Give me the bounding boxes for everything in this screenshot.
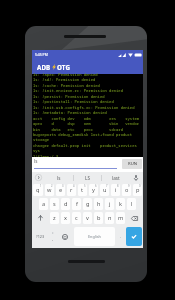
staticText: q — [36, 186, 40, 194]
staticText: d — [64, 200, 68, 208]
staticText: 5 — [84, 184, 86, 188]
staticText: bugreports debug_ramdisk lost+found prod… — [33, 132, 133, 137]
staticText: 0 — [139, 184, 141, 188]
staticText: 8 — [117, 184, 119, 188]
staticText: l — [131, 200, 133, 208]
button[interactable]: h — [94, 198, 103, 210]
button[interactable]: last — [102, 172, 129, 183]
staticText: x — [64, 214, 67, 222]
button[interactable]: 3 — [56, 184, 65, 196]
staticText: 2 — [51, 184, 53, 188]
staticText: , — [52, 236, 54, 242]
button[interactable]: m — [116, 212, 125, 224]
button[interactable]: l — [127, 198, 136, 210]
button[interactable]: f — [72, 198, 81, 210]
staticText: y — [92, 186, 95, 194]
button[interactable]: Voice input — [129, 172, 143, 183]
button[interactable]: 6 — [89, 184, 98, 196]
staticText: ° — [52, 232, 54, 236]
staticText: ls: /cache: Permission denied — [33, 83, 100, 88]
button[interactable]: d — [61, 198, 70, 210]
staticText: LS — [85, 175, 90, 181]
button[interactable]: b — [94, 212, 103, 224]
staticText: 3 — [62, 184, 64, 188]
button[interactable]: Emoji — [57, 225, 72, 248]
staticText: ls — [34, 158, 38, 164]
staticText: c — [75, 214, 78, 222]
staticText: g — [86, 200, 90, 208]
staticText: z — [53, 214, 56, 222]
button[interactable]: n — [105, 212, 114, 224]
button[interactable]: j — [105, 198, 114, 210]
staticText: m — [118, 214, 124, 222]
staticText: t — [81, 186, 84, 194]
staticText: ls: /init.environ.rc: Permission denied — [33, 88, 123, 93]
staticText: English — [88, 234, 101, 239]
button[interactable]: ls — [45, 172, 73, 183]
button[interactable]: 1 — [33, 184, 43, 196]
staticText: 1|flame:/ $ — [33, 154, 59, 159]
staticText: 9 — [128, 184, 130, 188]
staticText: f — [76, 200, 78, 208]
button[interactable]: ° — [49, 225, 57, 248]
staticText: last — [112, 175, 120, 181]
staticText: charger default.prop init product_servic… — [33, 143, 137, 148]
staticText: s — [53, 200, 56, 208]
button[interactable]: Enter — [126, 227, 142, 246]
staticText: ls: /postinstall: Permission denied — [33, 99, 114, 104]
staticText: OTG — [57, 63, 71, 71]
staticText: u — [103, 186, 107, 194]
staticText: . — [120, 234, 122, 240]
staticText: bin data etc proc sdcard — [33, 127, 123, 132]
staticText: acct config dev odm res system — [33, 116, 140, 121]
staticText: 4 — [73, 184, 75, 188]
staticText: a — [42, 200, 46, 208]
button[interactable]: Shift — [32, 211, 49, 225]
staticText: w — [47, 186, 52, 194]
button[interactable]: v — [83, 212, 92, 224]
button[interactable]: ?123 — [32, 225, 49, 248]
staticText: 6 — [95, 184, 97, 188]
button[interactable]: 0 — [133, 184, 142, 196]
staticText: 7 — [106, 184, 108, 188]
button[interactable]: x — [61, 212, 70, 224]
staticText: ls — [57, 175, 61, 181]
button[interactable]: 9 — [122, 184, 131, 196]
staticText: sys — [33, 148, 40, 153]
staticText: ?123 — [36, 234, 45, 239]
staticText: b — [97, 214, 101, 222]
staticText: n — [108, 214, 112, 222]
staticText: ls: /apex: Permission denied — [33, 72, 98, 77]
button[interactable]: More suggestions — [32, 172, 45, 183]
staticText: k — [119, 200, 122, 208]
staticText: RUN — [128, 161, 137, 167]
staticText: i — [115, 186, 117, 194]
button[interactable]: z — [50, 212, 59, 224]
staticText: storage — [33, 137, 50, 142]
button[interactable]: 8 — [111, 184, 120, 196]
staticText: j — [109, 200, 111, 208]
button[interactable]: LS — [74, 172, 101, 183]
button[interactable]: English — [74, 227, 115, 246]
button[interactable]: RUN — [122, 159, 142, 169]
button[interactable]: g — [83, 198, 92, 210]
button[interactable]: c — [72, 212, 81, 224]
staticText: ls: /sd/: Permission denied — [33, 77, 96, 82]
button[interactable]: 5 — [78, 184, 87, 196]
staticText: r — [70, 186, 73, 194]
staticText: p — [136, 186, 140, 194]
button[interactable]: ls — [34, 158, 117, 172]
button[interactable]: a — [39, 198, 48, 210]
button[interactable]: 4 — [67, 184, 76, 196]
button[interactable]: 2 — [45, 184, 54, 196]
staticText: ls: /metadata: Permission denied — [33, 110, 107, 115]
staticText: 5:45 PM — [35, 52, 48, 57]
staticText: o — [125, 186, 129, 194]
button[interactable]: k — [116, 198, 125, 210]
button[interactable]: 7 — [100, 184, 109, 196]
staticText: v — [86, 214, 89, 222]
button[interactable]: Backspace — [126, 211, 143, 225]
staticText: h — [97, 200, 101, 208]
button[interactable]: s — [50, 198, 59, 210]
